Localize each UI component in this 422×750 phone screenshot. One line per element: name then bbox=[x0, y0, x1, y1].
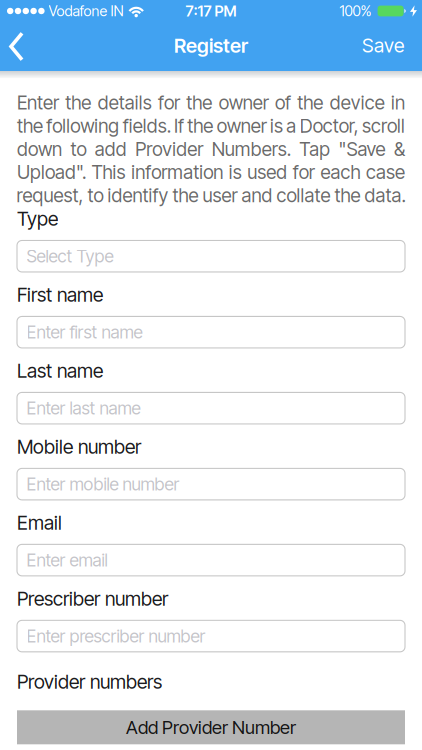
staticText: Add Provider Number bbox=[126, 716, 296, 738]
staticText: device bbox=[330, 91, 385, 114]
staticText: owner bbox=[217, 114, 267, 137]
staticText: Enter mobile number bbox=[26, 474, 179, 495]
staticText: Prescriber number bbox=[17, 587, 168, 610]
staticText: Enter first name bbox=[26, 322, 142, 343]
staticText: is bbox=[229, 161, 242, 184]
staticText: If bbox=[174, 114, 184, 137]
button[interactable]: Enter last name bbox=[17, 392, 405, 424]
button[interactable]: Save bbox=[362, 22, 422, 71]
staticText: Select Type bbox=[26, 246, 113, 267]
staticText: owner bbox=[219, 91, 269, 114]
staticText: details bbox=[98, 91, 152, 114]
staticText: Vodafone IN bbox=[49, 2, 124, 20]
staticText: & bbox=[394, 138, 405, 160]
button[interactable]: Add Provider Number bbox=[17, 710, 405, 744]
staticText: add bbox=[95, 138, 127, 160]
staticText: for bbox=[158, 91, 180, 114]
staticText: Email bbox=[17, 511, 62, 534]
button[interactable]: Select Type bbox=[17, 240, 405, 272]
staticText: used bbox=[247, 161, 287, 184]
staticText: 7:17 PM bbox=[185, 2, 236, 20]
staticText: the bbox=[187, 114, 213, 137]
staticText: the bbox=[65, 91, 91, 114]
staticText: Enter bbox=[17, 91, 59, 114]
staticText: information bbox=[131, 161, 223, 184]
button[interactable]: Enter mobile number bbox=[17, 468, 405, 500]
staticText: Provider bbox=[135, 138, 203, 160]
staticText: following bbox=[46, 114, 119, 137]
staticText: of bbox=[275, 91, 291, 114]
button[interactable]: Enter prescriber number bbox=[17, 620, 405, 652]
staticText: Numbers. bbox=[212, 138, 291, 160]
staticText: for bbox=[293, 161, 315, 184]
staticText: each bbox=[320, 161, 360, 184]
staticText: Tap bbox=[299, 138, 330, 160]
staticText: Enter last name bbox=[26, 398, 140, 419]
staticText: scroll bbox=[362, 114, 405, 137]
staticText: down bbox=[17, 138, 62, 160]
staticText: fields. bbox=[123, 114, 171, 137]
staticText: the bbox=[17, 114, 43, 137]
staticText: Mobile number bbox=[17, 435, 141, 458]
staticText: Doctor, bbox=[300, 114, 359, 137]
staticText: Register bbox=[174, 33, 248, 57]
staticText: Save bbox=[362, 34, 404, 57]
staticText: to bbox=[70, 138, 86, 160]
staticText: Upload". bbox=[17, 161, 86, 184]
staticText: the bbox=[297, 91, 323, 114]
staticText: This bbox=[92, 161, 126, 184]
staticText: is bbox=[270, 114, 283, 137]
staticText: Last name bbox=[17, 359, 103, 382]
staticText: request, to identify the user and collat… bbox=[16, 184, 405, 207]
button[interactable]: Back bbox=[0, 22, 36, 71]
staticText: Enter email bbox=[26, 549, 107, 571]
staticText: "Save bbox=[339, 138, 386, 160]
staticText: Enter prescriber number bbox=[26, 625, 205, 647]
staticText: 100% bbox=[340, 2, 372, 20]
staticText: Provider numbers bbox=[17, 670, 162, 693]
button[interactable]: Enter email bbox=[17, 544, 405, 576]
staticText: case bbox=[366, 161, 405, 184]
staticText: Type bbox=[17, 207, 58, 230]
staticText: the bbox=[186, 91, 212, 114]
staticText: in bbox=[391, 91, 405, 114]
staticText: a bbox=[286, 114, 296, 137]
button[interactable]: Enter first name bbox=[17, 316, 405, 348]
staticText: First name bbox=[17, 283, 103, 306]
